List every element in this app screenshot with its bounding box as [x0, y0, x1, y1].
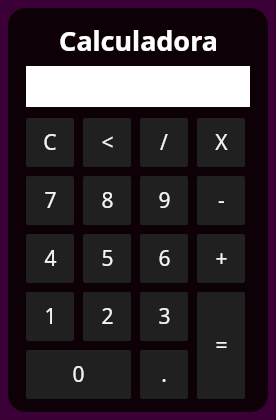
button[interactable]: / — [140, 118, 188, 167]
staticText: 1 — [44, 302, 57, 331]
staticText: + — [215, 244, 228, 273]
staticText: X — [215, 128, 228, 157]
staticText: < — [101, 128, 114, 157]
button[interactable]: < — [83, 118, 131, 167]
button[interactable]: 4 — [26, 234, 74, 283]
button[interactable]: = — [197, 292, 245, 399]
staticText: 9 — [158, 186, 171, 215]
staticText: / — [160, 128, 168, 157]
button[interactable]: . — [140, 350, 188, 399]
staticText: 6 — [158, 244, 171, 273]
button[interactable]: C — [26, 118, 74, 167]
staticText: 4 — [44, 244, 57, 273]
staticText: C — [43, 128, 57, 157]
button[interactable]: 1 — [26, 292, 74, 341]
button[interactable]: 5 — [83, 234, 131, 283]
staticText: 2 — [101, 302, 114, 331]
staticText: 3 — [158, 302, 171, 331]
staticText: 7 — [44, 186, 57, 215]
button[interactable]: - — [197, 176, 245, 225]
staticText: 8 — [101, 186, 114, 215]
button[interactable]: X — [197, 118, 245, 167]
button[interactable]: 0 — [26, 350, 131, 399]
button[interactable]: 8 — [83, 176, 131, 225]
staticText: = — [215, 331, 228, 360]
button[interactable]: 9 — [140, 176, 188, 225]
staticText: 0 — [72, 360, 85, 389]
staticText: - — [218, 186, 225, 215]
button[interactable]: 6 — [140, 234, 188, 283]
staticText: 5 — [101, 244, 114, 273]
staticText: Calculadora — [59, 22, 218, 59]
button[interactable]: 3 — [140, 292, 188, 341]
button[interactable]: 2 — [83, 292, 131, 341]
button[interactable]: 7 — [26, 176, 74, 225]
button[interactable]: + — [197, 234, 245, 283]
staticText: . — [161, 360, 167, 389]
